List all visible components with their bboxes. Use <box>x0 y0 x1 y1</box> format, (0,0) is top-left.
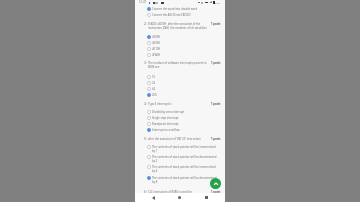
button[interactable]: Back <box>145 193 162 202</box>
button[interactable]: 64 <box>147 87 220 91</box>
button[interactable]: The contents of stack pointer will be in… <box>147 145 220 153</box>
staticText: 32 <box>152 81 220 85</box>
staticText: The number of software interrupts presen… <box>148 61 207 69</box>
button[interactable]: Breakpoint interrupt <box>147 122 220 126</box>
staticText: 16 <box>152 75 220 79</box>
button[interactable]: The contents of stack pointer will be de… <box>147 155 220 163</box>
staticText: 256 <box>152 93 220 97</box>
button[interactable]: Single step interrupt <box>147 116 220 120</box>
staticText: 4002H <box>152 41 220 45</box>
button[interactable]: Scroll to top <box>210 178 221 189</box>
staticText: Type 4 interrupt is <box>148 102 207 106</box>
button[interactable]: Home <box>171 193 188 202</box>
button[interactable]: 4010H <box>147 47 220 51</box>
button[interactable]: Interrupt on overflow <box>147 128 220 132</box>
button[interactable]: The contents of stack pointer will be de… <box>147 176 220 184</box>
staticText: The contents of stack pointer will be de… <box>152 155 220 163</box>
staticText: 1 point <box>211 190 221 194</box>
button[interactable]: Convert the word into double word <box>147 7 220 11</box>
button[interactable]: 32 <box>147 81 220 85</box>
button[interactable]: Recents <box>198 193 215 202</box>
button[interactable]: 16 <box>147 75 220 79</box>
staticText: The contents of stack pointer will be in… <box>152 165 220 173</box>
staticText: 3) <box>144 61 147 65</box>
staticText: If ADD=4000H, after the execution of the… <box>148 22 207 30</box>
staticText: Single step interrupt <box>152 116 220 120</box>
staticText: CLC instruction of 8086 is used for <box>148 190 207 194</box>
staticText: Convert the word into double word <box>152 7 220 11</box>
staticText: 12:47 <box>139 0 147 4</box>
staticText: 4FA0H <box>152 53 220 57</box>
staticText: 4) <box>144 102 147 106</box>
staticText: 62% <box>215 1 220 4</box>
staticText: 4010H <box>152 47 220 51</box>
staticText: Convert the ASCII into EBCDIC <box>152 13 220 17</box>
staticText: 1 point <box>211 102 221 106</box>
staticText: 64 <box>152 87 220 91</box>
button[interactable]: 4002H <box>147 41 220 45</box>
staticText: Divided by zero interrupt <box>152 110 220 114</box>
staticText: 4000H <box>152 35 220 39</box>
staticText: after the execution of 'INT 20' instruct… <box>148 137 207 141</box>
staticText: 1 point <box>211 137 221 141</box>
button[interactable]: 4FA0H <box>147 53 220 57</box>
staticText: 1 point <box>211 61 221 65</box>
staticText: 1 point <box>211 22 221 26</box>
button[interactable]: 256 <box>147 93 220 97</box>
staticText: 2) <box>144 22 147 26</box>
staticText: Breakpoint interrupt <box>152 122 220 126</box>
button[interactable]: 4000H <box>147 35 220 39</box>
staticText: The contents of stack pointer will be de… <box>152 176 220 184</box>
staticText: The contents of stack pointer will be in… <box>152 145 220 153</box>
staticText: 6) <box>144 190 147 194</box>
button[interactable]: Divided by zero interrupt <box>147 110 220 114</box>
button[interactable]: Convert the ASCII into EBCDIC <box>147 13 220 17</box>
button[interactable]: The contents of stack pointer will be in… <box>147 165 220 173</box>
staticText: Interrupt on overflow <box>152 128 220 132</box>
staticText: 5) <box>144 137 147 141</box>
